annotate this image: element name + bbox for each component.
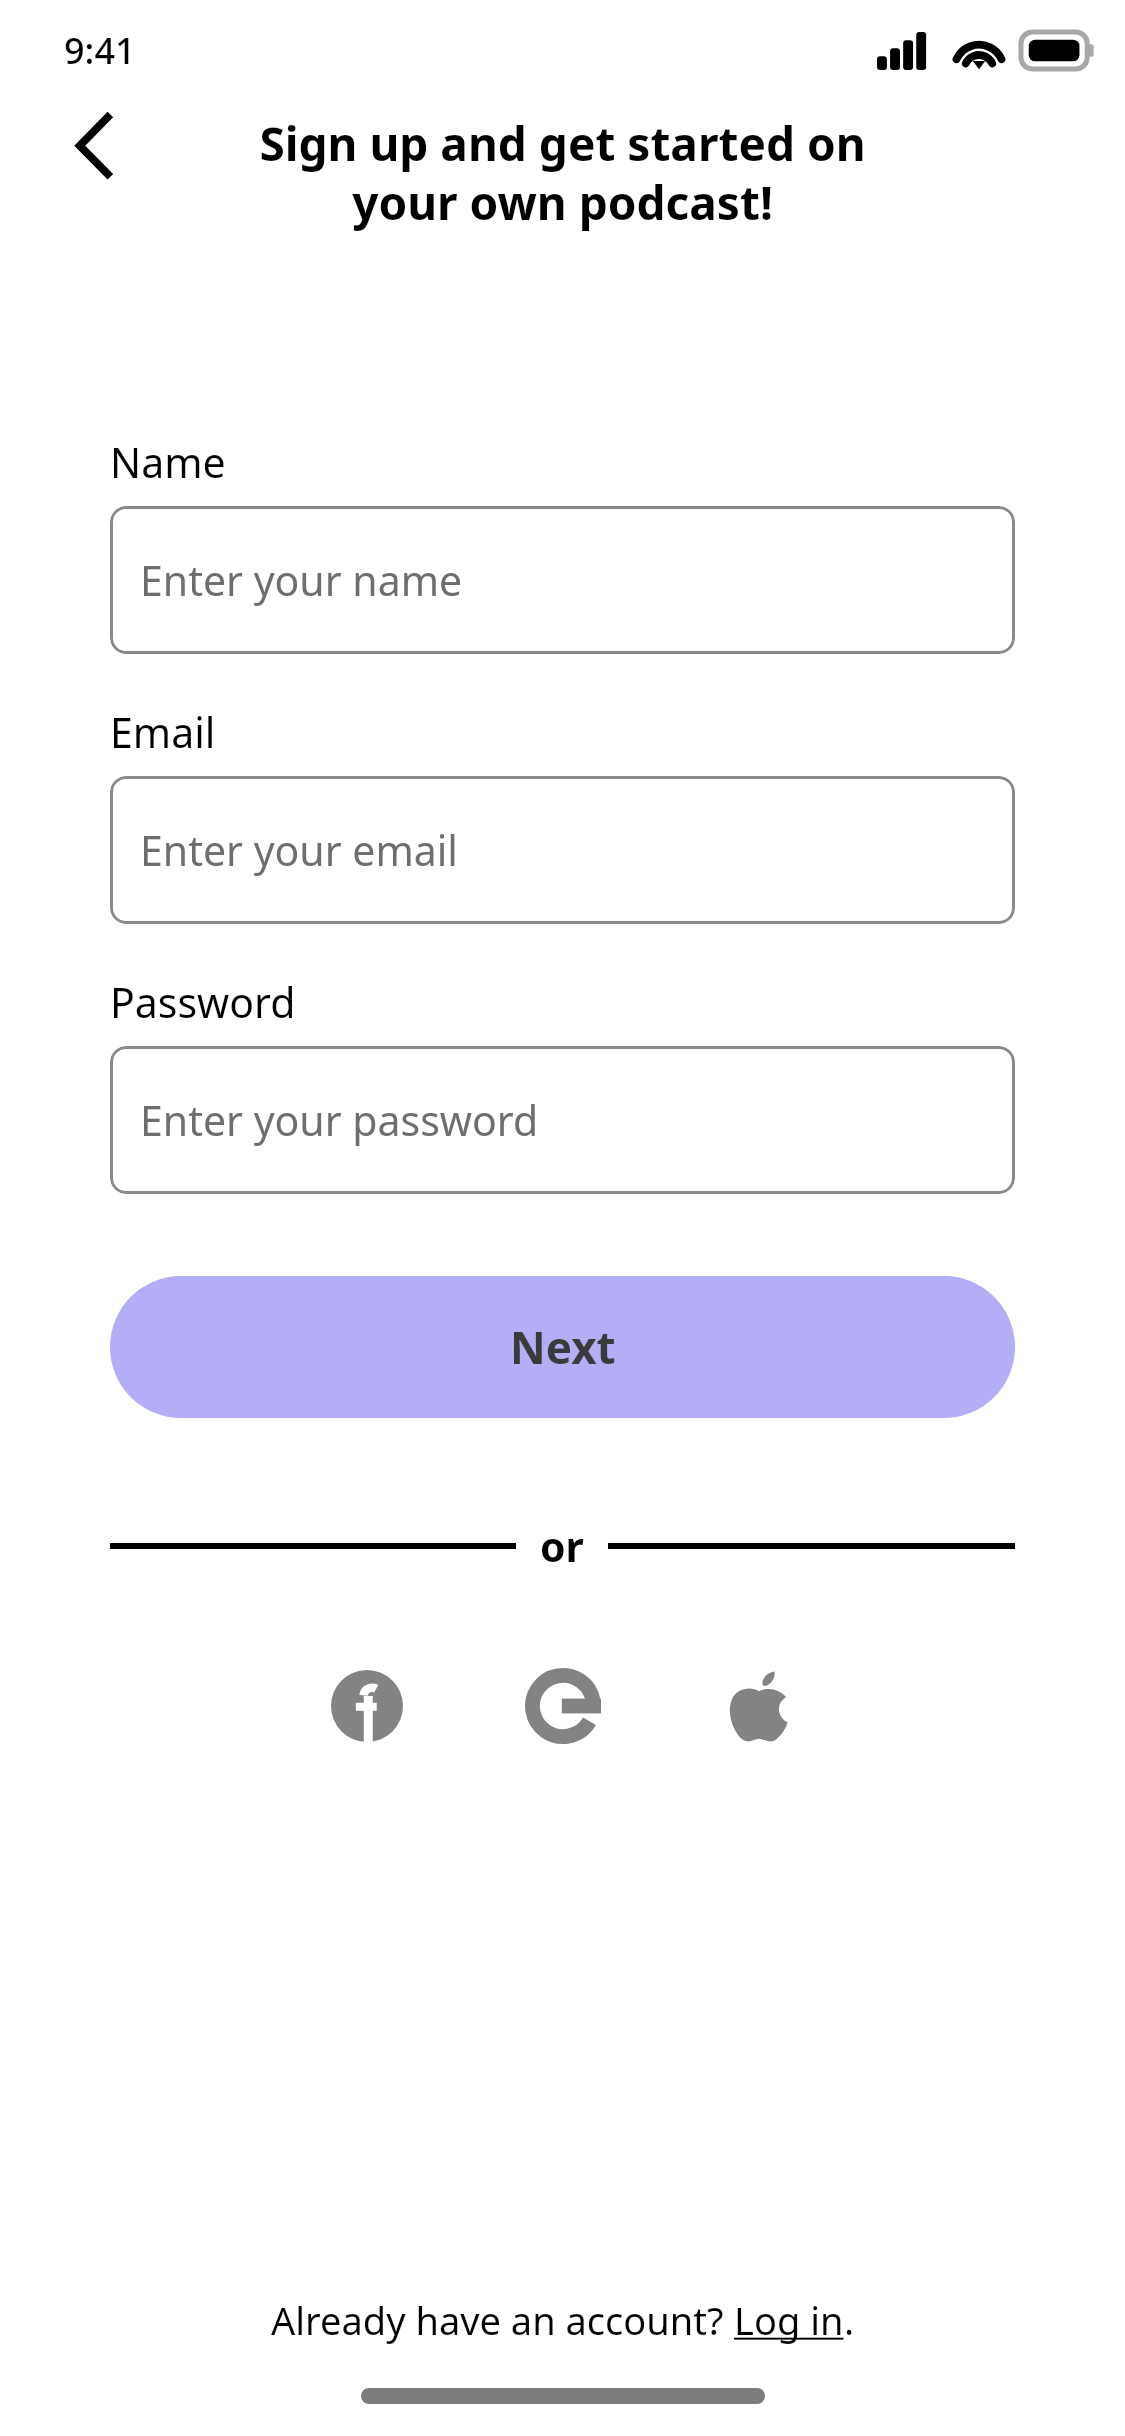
staticText: Already have an account? xyxy=(271,2294,734,2346)
button[interactable]: Sign up with Google xyxy=(513,1656,613,1756)
staticText: Email xyxy=(110,704,216,760)
staticText: Enter your email xyxy=(140,822,458,878)
button[interactable]: Enter your email xyxy=(110,776,1015,924)
staticText: or xyxy=(540,1518,584,1574)
staticText: Enter your name xyxy=(140,552,463,608)
button[interactable]: Back xyxy=(50,102,146,198)
staticText: Next xyxy=(510,1317,616,1377)
staticText: 9:41 xyxy=(64,26,136,75)
staticText: Password xyxy=(110,974,296,1030)
button[interactable]: Log in xyxy=(734,2294,844,2346)
staticText: . xyxy=(844,2294,855,2346)
button[interactable]: Enter your password xyxy=(110,1046,1015,1194)
button[interactable]: Next xyxy=(110,1276,1015,1418)
staticText: Name xyxy=(110,434,226,490)
staticText: Sign up and get started on your own podc… xyxy=(140,112,985,233)
staticText: Enter your password xyxy=(140,1092,539,1148)
staticText: Log in xyxy=(734,2294,844,2346)
button[interactable]: Sign up with Apple xyxy=(709,1656,809,1756)
button[interactable]: Enter your name xyxy=(110,506,1015,654)
button[interactable]: Sign up with Facebook xyxy=(317,1656,417,1756)
